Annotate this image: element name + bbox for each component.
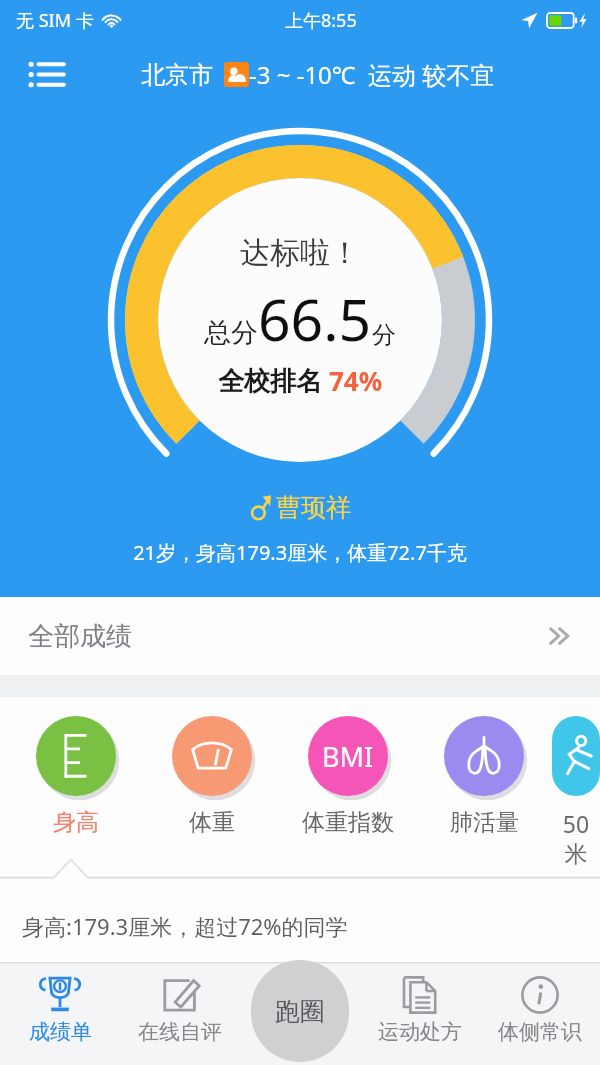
staticText: 上午8:55 (285, 8, 357, 33)
staticText: 总分 (204, 316, 258, 350)
staticText: 74% (329, 363, 383, 398)
staticText: 运动 较不宜 (368, 58, 495, 91)
button[interactable]: 体侧常识 (480, 962, 600, 1065)
staticText: 在线自评 (138, 1019, 222, 1045)
staticText: 21岁，身高179.3厘米，体重72.7千克 (133, 539, 467, 566)
button[interactable]: 跑圈 (251, 960, 349, 1062)
staticText: 分 (372, 320, 396, 350)
staticText: -3 ~ -10℃ (249, 58, 356, 91)
button[interactable]: 北京市 (141, 58, 495, 91)
staticText: 体重指数 (302, 808, 394, 837)
staticText: 北京市 (141, 60, 213, 90)
staticText: 50米 (552, 808, 600, 869)
button[interactable]: 50米 (552, 697, 600, 869)
button[interactable]: 肺活量 (416, 697, 552, 837)
staticText: 体重 (189, 808, 235, 837)
button[interactable]: 在线自评 (120, 962, 240, 1065)
staticText: 身高 (53, 808, 99, 837)
staticText: 无 SIM 卡 (16, 8, 94, 33)
button[interactable]: 成绩单 (0, 962, 120, 1065)
staticText: 成绩单 (29, 1019, 92, 1045)
staticText: BMI (322, 738, 374, 775)
button[interactable]: 全部成绩 (0, 597, 600, 675)
staticText: 运动处方 (378, 1019, 462, 1045)
staticText: 跑圈 (275, 996, 325, 1027)
staticText: 全部成绩 (28, 620, 132, 653)
staticText: 66.5 (258, 280, 372, 358)
button[interactable]: 身高 (8, 697, 144, 837)
staticText: 全校排名 (218, 362, 329, 398)
staticText: 身高:179.3厘米，超过72%的同学 (22, 911, 348, 941)
button[interactable]: 体重 (144, 697, 280, 837)
staticText: 达标啦！ (240, 234, 360, 272)
staticText: 肺活量 (450, 808, 519, 837)
button[interactable]: Menu (18, 46, 74, 102)
staticText: 曹顼祥 (276, 492, 351, 523)
button[interactable]: BMI (280, 697, 416, 837)
button[interactable]: 运动处方 (360, 962, 480, 1065)
staticText: 体侧常识 (498, 1019, 582, 1045)
